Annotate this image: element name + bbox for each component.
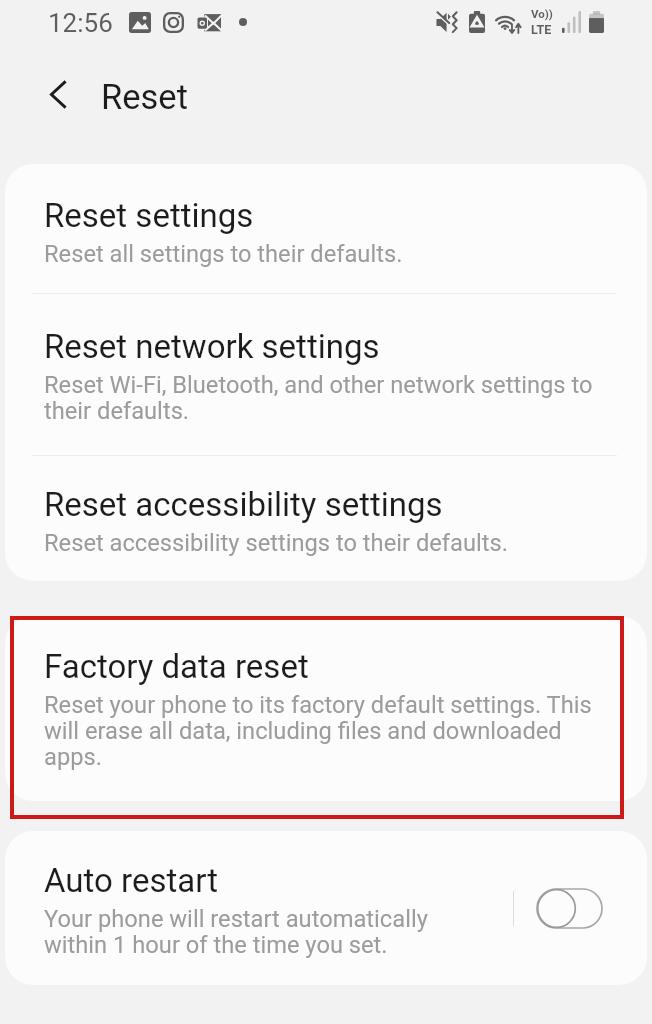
staticText: Reset settings [44, 196, 254, 235]
staticText: Factory data reset [44, 647, 309, 686]
button[interactable]: Auto restart [5, 831, 513, 985]
button[interactable]: Reset accessibility settings [5, 456, 647, 581]
staticText: Reset accessibility settings [44, 485, 443, 524]
staticText: Your phone will restart automatically wi… [44, 905, 474, 958]
staticText: Reset network settings [44, 327, 380, 366]
staticText: Vo)) [531, 7, 553, 20]
staticText: Auto restart [44, 861, 218, 900]
staticText: Reset Wi-Fi, Bluetooth, and other networ… [44, 371, 608, 424]
staticText: LTE [531, 22, 552, 37]
button[interactable]: Reset settings [5, 164, 647, 293]
staticText: Reset all settings to their defaults. [44, 240, 403, 268]
staticText: Reset your phone to its factory default … [44, 691, 608, 770]
button[interactable]: Reset network settings [5, 294, 647, 455]
staticText: Reset accessibility settings to their de… [44, 529, 508, 557]
staticText: 12:56 [48, 8, 113, 38]
staticText: Reset [101, 77, 188, 117]
button[interactable]: Factory data reset [5, 616, 647, 801]
button[interactable]: Auto restart toggle [536, 888, 603, 929]
button[interactable]: Navigate up [34, 70, 82, 118]
